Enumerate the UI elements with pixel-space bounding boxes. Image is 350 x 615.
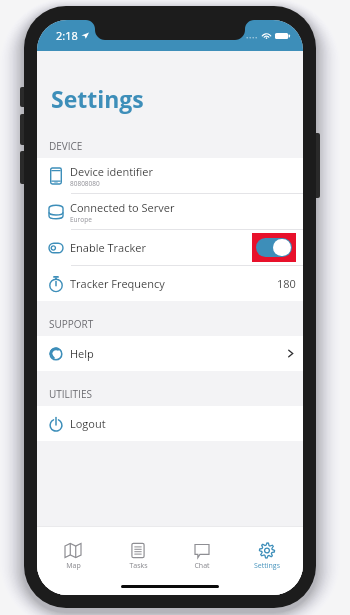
staticText: 180 bbox=[277, 276, 296, 291]
button[interactable]: Tracker Frequency bbox=[37, 266, 303, 301]
staticText: 80808080 bbox=[70, 179, 100, 188]
button[interactable]: Settings bbox=[239, 541, 295, 589]
staticText: Help bbox=[70, 346, 94, 361]
button[interactable]: Logout bbox=[37, 406, 303, 441]
staticText: Settings bbox=[51, 83, 144, 114]
staticText: UTILITIES bbox=[49, 387, 92, 401]
staticText: Enable Tracker bbox=[70, 240, 146, 255]
staticText: Settings bbox=[254, 561, 280, 571]
staticText: Tracker Frequency bbox=[70, 276, 165, 291]
staticText: Device identifier bbox=[70, 164, 154, 179]
button[interactable]: Tasks bbox=[110, 541, 166, 589]
staticText: Chat bbox=[194, 561, 210, 571]
button[interactable]: Connected to Server bbox=[37, 194, 303, 229]
button[interactable]: Enable Tracker bbox=[37, 230, 303, 265]
staticText: 2:18 bbox=[56, 28, 78, 43]
button[interactable]: Enable Tracker toggle bbox=[256, 238, 292, 257]
button[interactable]: Map bbox=[45, 541, 101, 589]
staticText: SUPPORT bbox=[49, 317, 94, 331]
staticText: Logout bbox=[70, 416, 106, 431]
button[interactable]: Device identifier bbox=[37, 158, 303, 193]
button[interactable]: Chat bbox=[174, 541, 230, 589]
staticText: DEVICE bbox=[49, 139, 83, 153]
other: Open Help bbox=[285, 348, 296, 359]
staticText: Tasks bbox=[129, 561, 148, 571]
staticText: Map bbox=[66, 561, 81, 571]
staticText: Europe bbox=[70, 215, 92, 224]
staticText: Connected to Server bbox=[70, 200, 175, 215]
button[interactable]: Help bbox=[37, 336, 303, 371]
